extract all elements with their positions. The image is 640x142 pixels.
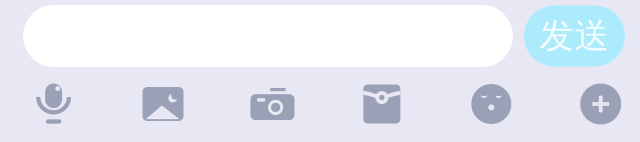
staticText: 发送 [539,15,609,57]
button[interactable]: Red packet [346,73,418,135]
button[interactable]: 发送 [524,5,625,66]
button[interactable]: Voice message [18,73,90,135]
button[interactable]: More [565,73,637,135]
button[interactable]: Camera [236,73,308,135]
button[interactable]: Photos [127,73,199,135]
button[interactable]: Message [23,5,513,67]
button[interactable]: Emoji [455,73,527,135]
